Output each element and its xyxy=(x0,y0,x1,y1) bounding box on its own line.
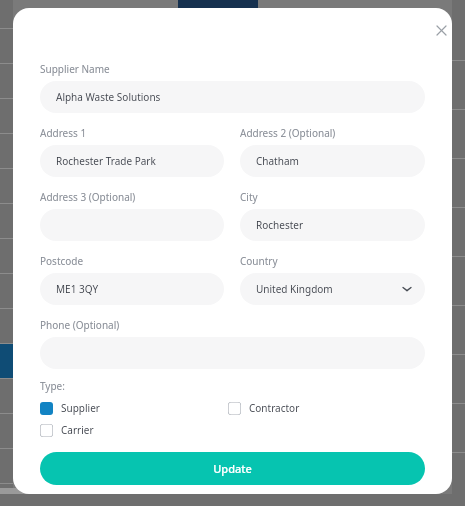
button[interactable]: Update xyxy=(40,452,425,485)
staticText: Carrier xyxy=(61,423,94,437)
staticText: Country xyxy=(240,254,278,268)
staticText: Supplier xyxy=(61,401,100,415)
staticText: Address 3 (Optional) xyxy=(40,190,136,204)
button[interactable]: Alpha Waste Solutions xyxy=(40,81,425,113)
staticText: Address 2 (Optional) xyxy=(240,126,336,140)
staticText: Type: xyxy=(40,379,65,393)
button[interactable]: ME1 3QY xyxy=(40,273,224,305)
staticText: City xyxy=(240,190,258,204)
staticText: Contractor xyxy=(249,401,300,415)
staticText: United Kingdom xyxy=(256,282,333,296)
button[interactable]: Contractor xyxy=(228,401,425,415)
staticText: Rochester xyxy=(256,218,304,232)
button[interactable]: Close xyxy=(425,14,452,46)
staticText: Update xyxy=(213,461,252,476)
button[interactable]: Supplier xyxy=(40,401,228,415)
button[interactable]: Rochester xyxy=(240,209,425,241)
button[interactable]: United Kingdom xyxy=(240,273,425,305)
button[interactable]: Rochester Trade Park xyxy=(40,145,224,177)
button[interactable]: Carrier xyxy=(40,423,228,437)
staticText: Rochester Trade Park xyxy=(56,154,156,168)
staticText: Supplier Name xyxy=(40,62,110,76)
button[interactable]: Chatham xyxy=(240,145,425,177)
staticText: ME1 3QY xyxy=(56,282,99,296)
staticText: Postcode xyxy=(40,254,84,268)
staticText: Phone (Optional) xyxy=(40,318,120,332)
staticText: Address 1 xyxy=(40,126,87,140)
staticText: Alpha Waste Solutions xyxy=(56,90,161,104)
staticText: Chatham xyxy=(256,154,299,168)
